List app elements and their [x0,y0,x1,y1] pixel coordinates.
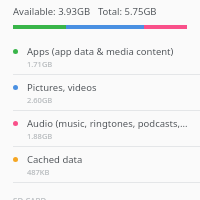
staticText: Cached data [27,153,83,166]
staticText: Audio (music, ringtones, podcasts, e.. [27,117,190,130]
staticText: 1.71GB [27,59,53,69]
button[interactable]: Pictures, videos [0,75,200,111]
staticText: 1.88GB [27,131,53,141]
staticText: Apps (app data & media content) [27,45,174,58]
button[interactable]: Cached data [0,147,200,183]
staticText: Available: 3.93GB [13,5,91,18]
staticText: 2.60GB [27,95,53,105]
button[interactable]: Apps (app data & media content) [0,39,200,75]
button[interactable]: Audio (music, ringtones, podcasts, e.. [0,111,200,147]
staticText: Pictures, videos [27,81,97,94]
staticText: Total: 5.75GB [98,5,157,18]
staticText: SD CARD [13,196,47,200]
staticText: 487KB [27,167,50,177]
